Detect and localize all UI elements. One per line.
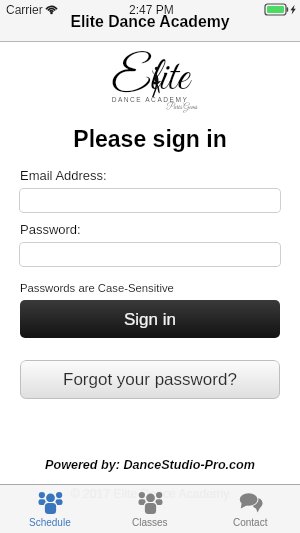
button[interactable]: Schedule: [0, 485, 100, 533]
staticText: Carrier: [6, 3, 43, 16]
staticText: Elite Dance Academy: [0, 13, 300, 31]
staticText: © 2017 Elite Dance Academy: [0, 487, 300, 501]
button[interactable]: Contact: [200, 485, 300, 533]
staticText: Passwords are Case-Sensitive: [20, 282, 174, 295]
staticText: Schedule: [29, 517, 71, 528]
button[interactable]: Classes: [100, 485, 200, 533]
button[interactable]: Password: [19, 242, 281, 267]
staticText: Classes: [132, 517, 168, 528]
staticText: DANCE ACADEMY: [0, 96, 300, 103]
staticText: Paris Gems: [32, 102, 300, 112]
staticText: Sign in: [124, 310, 176, 329]
staticText: Forgot your password?: [63, 370, 237, 389]
button[interactable]: Email Address: [19, 188, 281, 213]
staticText: Email Address:: [20, 168, 107, 183]
button[interactable]: Forgot your password?: [20, 360, 280, 399]
staticText: Elite: [0, 50, 300, 108]
button[interactable]: Sign in: [20, 300, 280, 338]
staticText: 2:47 PM: [129, 3, 174, 16]
staticText: Password:: [20, 222, 81, 237]
staticText: Contact: [233, 517, 268, 528]
staticText: Powered by: DanceStudio-Pro.com: [0, 458, 300, 472]
staticText: Please sign in: [0, 126, 300, 152]
